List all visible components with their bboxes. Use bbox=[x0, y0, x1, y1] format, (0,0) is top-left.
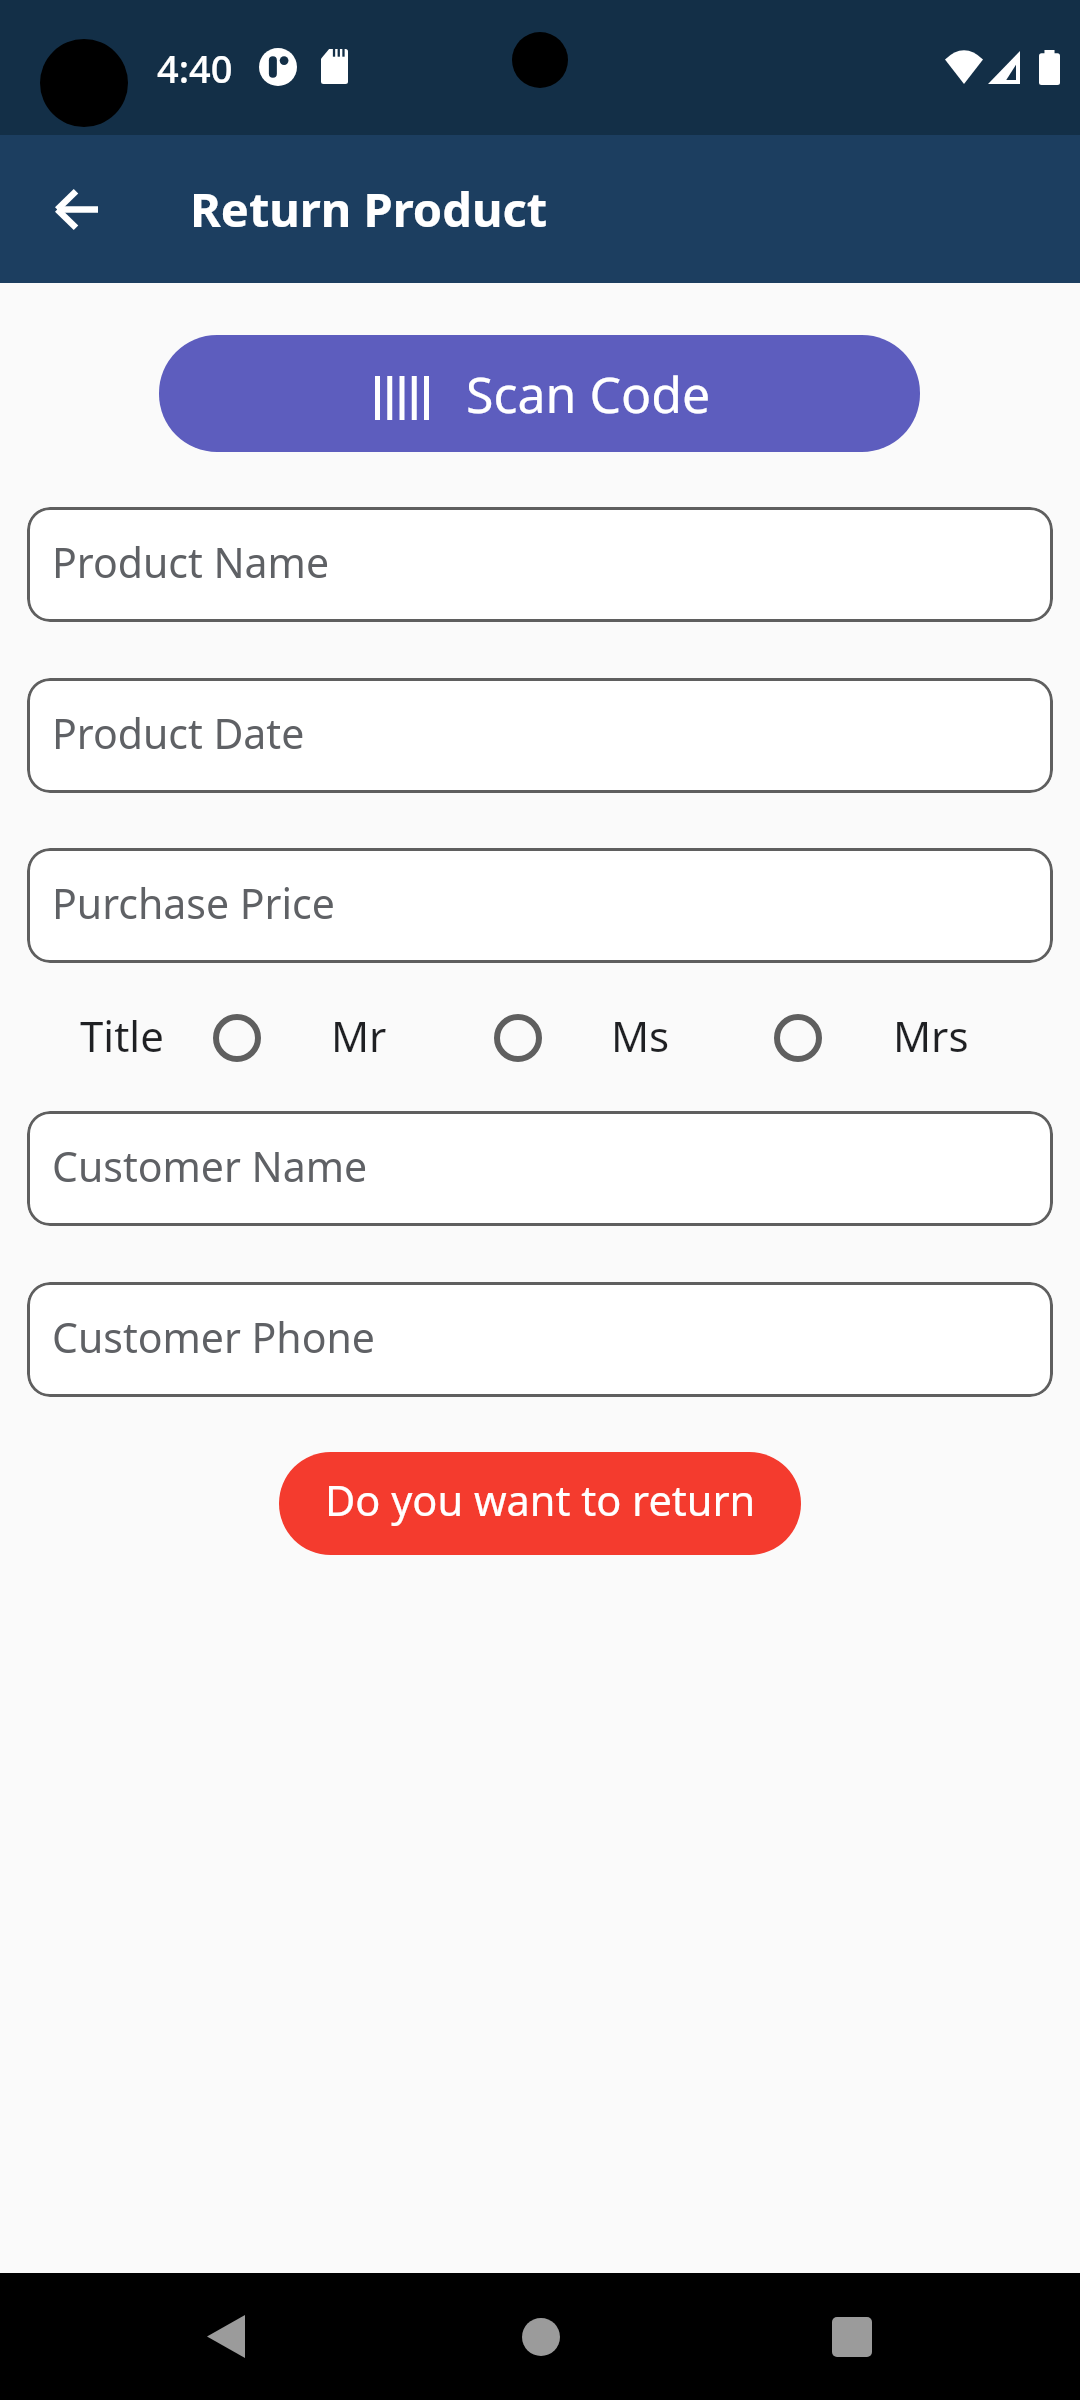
button[interactable]: Recents bbox=[796, 2273, 907, 2400]
button[interactable]: Customer Phone bbox=[27, 1282, 1053, 1397]
staticText: Product Name bbox=[52, 534, 330, 590]
button[interactable]: Ms bbox=[493, 1010, 670, 1066]
button[interactable]: Product Name bbox=[27, 507, 1053, 622]
staticText: Title bbox=[80, 1007, 164, 1063]
button[interactable]: Do you want to return bbox=[279, 1452, 801, 1555]
staticText: Mr bbox=[331, 1007, 387, 1063]
button[interactable]: Mr bbox=[212, 1010, 387, 1066]
button[interactable]: Mrs bbox=[773, 1010, 969, 1066]
staticText: 4:40 bbox=[157, 42, 233, 94]
button[interactable]: Product Date bbox=[27, 678, 1053, 793]
staticText: Return Product bbox=[190, 177, 548, 241]
staticText: Ms bbox=[611, 1007, 670, 1063]
button[interactable]: Home bbox=[485, 2273, 596, 2400]
button[interactable]: Back bbox=[170, 2273, 281, 2400]
button[interactable]: Back bbox=[28, 135, 124, 283]
staticText: Do you want to return bbox=[325, 1472, 756, 1529]
button[interactable]: Customer Name bbox=[27, 1111, 1053, 1226]
button[interactable]: Purchase Price bbox=[27, 848, 1053, 963]
staticText: Customer Name bbox=[52, 1138, 368, 1194]
staticText: Mrs bbox=[893, 1007, 969, 1063]
staticText: Purchase Price bbox=[52, 875, 335, 931]
staticText: Customer Phone bbox=[52, 1309, 375, 1365]
button[interactable]: Scan Code bbox=[159, 335, 920, 452]
staticText: Product Date bbox=[52, 705, 305, 761]
staticText: Scan Code bbox=[466, 360, 711, 428]
